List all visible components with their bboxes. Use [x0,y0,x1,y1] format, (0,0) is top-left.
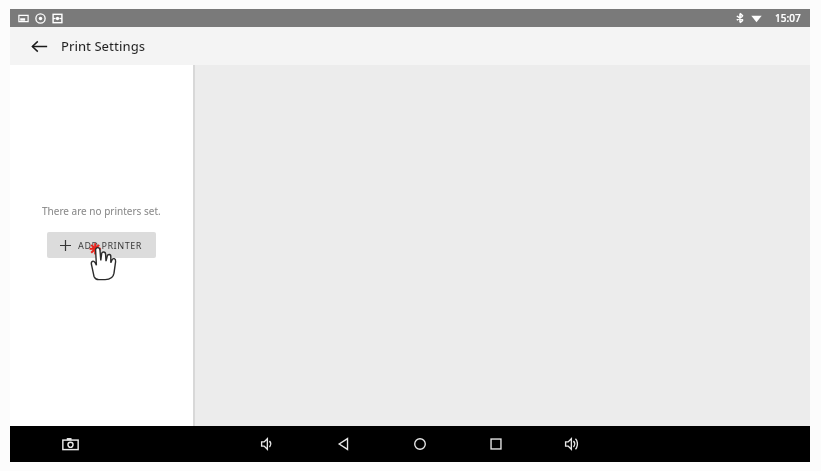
staticText: Print Settings [61,37,146,55]
button[interactable]: Screenshot [54,428,86,460]
staticText: 15:07 [775,11,801,25]
button[interactable]: Recents [480,428,512,460]
button[interactable]: Home [404,428,436,460]
button[interactable]: Back [24,31,54,61]
button[interactable]: ADD PRINTER [47,232,156,258]
button[interactable]: Volume down [252,428,284,460]
button[interactable]: Back [328,428,360,460]
staticText: There are no printers set. [42,204,161,218]
staticText: ADD PRINTER [78,239,143,251]
button[interactable]: Volume up [556,428,588,460]
